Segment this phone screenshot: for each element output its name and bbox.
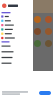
button[interactable]: Accept	[39, 91, 51, 95]
button[interactable]	[1, 19, 53, 22]
button[interactable]	[1, 32, 53, 35]
button[interactable]	[1, 15, 53, 18]
button[interactable]	[1, 28, 53, 31]
button[interactable]	[1, 23, 53, 27]
button[interactable]	[1, 36, 53, 40]
